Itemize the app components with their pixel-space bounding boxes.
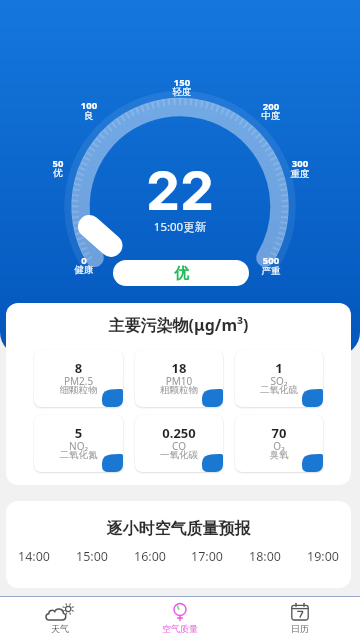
- staticText: 0: [59, 254, 109, 267]
- staticText: PM10: [135, 374, 223, 388]
- staticText: 100: [64, 99, 114, 112]
- staticText: NO₂: [34, 439, 123, 453]
- staticText: 70: [235, 424, 323, 442]
- staticText: 中度: [246, 110, 296, 122]
- staticText: 粗颗粒物: [135, 384, 223, 396]
- staticText: 二氧化氮: [34, 449, 123, 461]
- staticText: CO: [135, 439, 223, 453]
- staticText: 200: [246, 100, 296, 113]
- staticText: 1: [235, 359, 323, 377]
- staticText: 优: [174, 264, 189, 283]
- staticText: 18: [135, 359, 223, 377]
- staticText: 22: [0, 158, 360, 223]
- staticText: 0.250: [135, 424, 223, 442]
- staticText: 二氧化硫: [235, 384, 323, 396]
- button[interactable]: Weather: [0, 597, 120, 640]
- staticText: 严重: [246, 265, 296, 277]
- staticText: 5: [34, 424, 123, 442]
- button[interactable]: Calendar: [240, 597, 360, 640]
- staticText: 500: [246, 254, 296, 267]
- staticText: 细颗粒物: [34, 384, 123, 396]
- button[interactable]: 5: [34, 415, 123, 472]
- staticText: O₃: [235, 439, 323, 453]
- staticText: 300: [275, 157, 325, 170]
- staticText: 一氧化碳: [135, 449, 223, 461]
- staticText: 天气: [0, 623, 120, 634]
- staticText: SO₂: [235, 374, 323, 388]
- button[interactable]: 8: [34, 350, 123, 407]
- staticText: 8: [34, 359, 123, 377]
- staticText: 50: [33, 157, 83, 170]
- staticText: 健康: [59, 264, 109, 276]
- staticText: 空气质量: [120, 623, 240, 634]
- staticText: 主要污染物(μg/m³): [6, 314, 351, 336]
- staticText: 17:00: [191, 548, 223, 565]
- button[interactable]: Air quality: [120, 597, 240, 640]
- staticText: 15:00: [76, 548, 108, 565]
- staticText: PM2.5: [34, 374, 123, 388]
- button[interactable]: 0.250: [135, 415, 223, 472]
- staticText: 150: [157, 76, 207, 89]
- staticText: 15:00更新: [0, 219, 360, 235]
- staticText: 19:00: [307, 548, 339, 565]
- button[interactable]: 1: [235, 350, 323, 407]
- staticText: 良: [64, 110, 114, 122]
- staticText: 重度: [275, 168, 325, 180]
- button[interactable]: 18: [135, 350, 223, 407]
- staticText: 逐小时空气质量预报: [6, 519, 351, 539]
- staticText: 18:00: [249, 548, 281, 565]
- staticText: 14:00: [18, 548, 50, 565]
- button[interactable]: 70: [235, 415, 323, 472]
- staticText: 16:00: [134, 548, 166, 565]
- staticText: 臭氧: [235, 449, 323, 461]
- button[interactable]: 优: [113, 260, 249, 286]
- staticText: 轻度: [157, 86, 207, 98]
- staticText: 优: [33, 167, 83, 179]
- staticText: 日历: [240, 623, 360, 634]
